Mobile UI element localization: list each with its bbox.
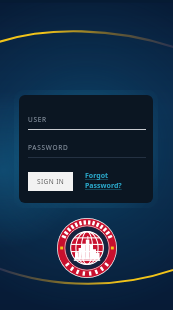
staticText: PASSWORD <box>28 143 69 152</box>
staticText: SIGN IN <box>37 177 65 186</box>
staticText: Forgot Password? <box>85 171 146 191</box>
other: Savills Studley Academy logo <box>57 218 117 278</box>
staticText: USER <box>28 115 47 124</box>
button[interactable]: Forgot Password? <box>85 169 146 193</box>
button[interactable]: SIGN IN <box>28 172 73 191</box>
